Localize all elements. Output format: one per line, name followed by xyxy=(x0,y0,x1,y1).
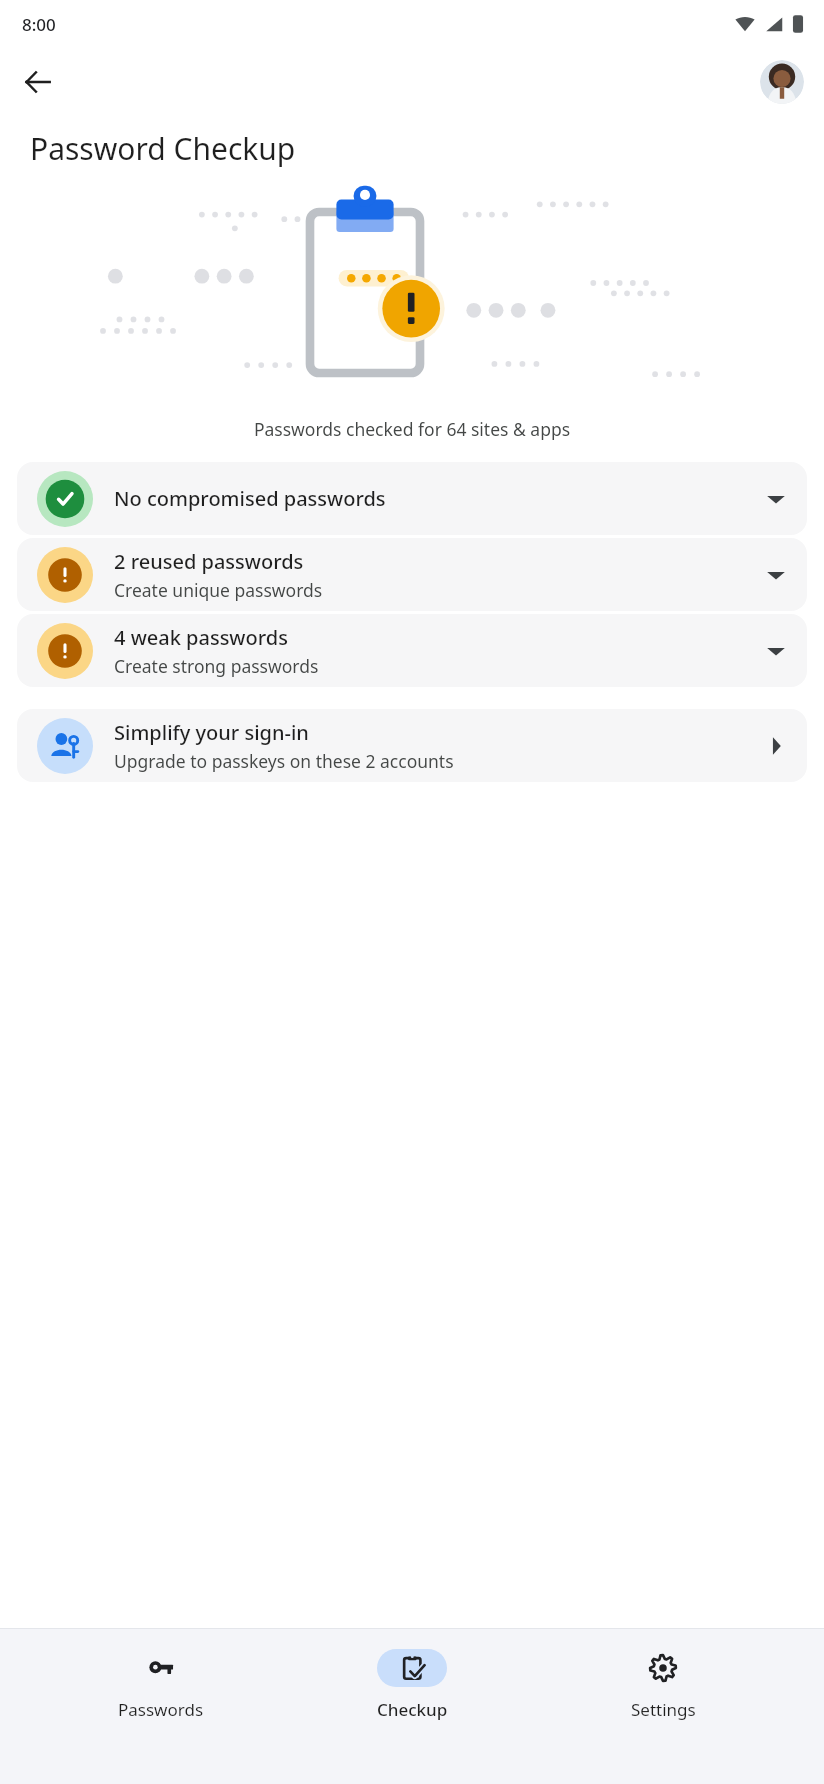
staticText: No compromised passwords xyxy=(114,485,386,512)
staticText: Passwords checked for 64 sites & apps xyxy=(16,417,808,441)
staticText: Settings xyxy=(631,1698,696,1721)
staticText: 2 reused passwords xyxy=(114,548,304,575)
staticText: Passwords xyxy=(118,1698,204,1721)
button[interactable]: Simplify your sign-in xyxy=(17,709,807,782)
button[interactable]: No compromised passwords xyxy=(17,462,807,535)
staticText: Upgrade to passkeys on these 2 accounts xyxy=(114,749,454,773)
staticText: Simplify your sign-in xyxy=(114,719,309,746)
staticText: 4 weak passwords xyxy=(114,624,288,651)
staticText: Password Checkup xyxy=(30,128,824,169)
staticText: Create strong passwords xyxy=(114,654,319,678)
staticText: 8:00 xyxy=(22,13,56,36)
staticText: Create unique passwords xyxy=(114,578,323,602)
button[interactable]: Checkup xyxy=(322,1629,502,1721)
button[interactable]: Settings xyxy=(573,1629,753,1721)
button[interactable]: Account xyxy=(760,60,804,104)
button[interactable]: Back xyxy=(14,58,62,106)
button[interactable]: 4 weak passwords xyxy=(17,614,807,687)
staticText: Checkup xyxy=(377,1698,448,1721)
button[interactable]: 2 reused passwords xyxy=(17,538,807,611)
button[interactable]: Passwords xyxy=(71,1629,251,1721)
